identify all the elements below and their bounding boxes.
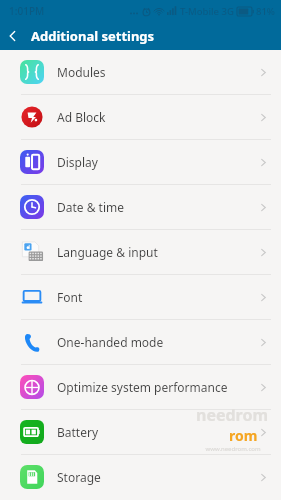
staticText: www.needrom.com (205, 445, 261, 453)
staticText: 1:01PM (9, 4, 45, 18)
button[interactable]: Ad Block (0, 95, 281, 139)
staticText: Display (57, 154, 258, 170)
button[interactable]: Back (0, 23, 26, 49)
staticText: T-Mobile 3G (180, 5, 234, 18)
button[interactable]: Battery (0, 410, 281, 454)
staticText: Date & time (57, 199, 258, 215)
button[interactable]: Optimize system performance (0, 365, 281, 409)
button[interactable]: Font (0, 275, 281, 319)
button[interactable]: Storage (0, 455, 281, 499)
staticText: Font (57, 289, 258, 305)
staticText: Optimize system performance (57, 379, 258, 395)
staticText: Storage (57, 469, 258, 485)
staticText: needrom (196, 404, 269, 426)
button[interactable]: One-handed mode (0, 320, 281, 364)
staticText: Language & input (57, 244, 258, 260)
button[interactable]: Language & input (0, 230, 281, 274)
staticText: Modules (57, 64, 258, 80)
button[interactable]: Display (0, 140, 281, 184)
staticText: Battery (57, 424, 258, 440)
staticText: Ad Block (57, 109, 258, 125)
button[interactable]: Date & time (0, 185, 281, 229)
button[interactable]: Modules (0, 50, 281, 94)
staticText: One-handed mode (57, 334, 258, 350)
staticText: rom (229, 426, 258, 445)
staticText: 81% (256, 5, 275, 18)
staticText: Additional settings (31, 27, 155, 45)
